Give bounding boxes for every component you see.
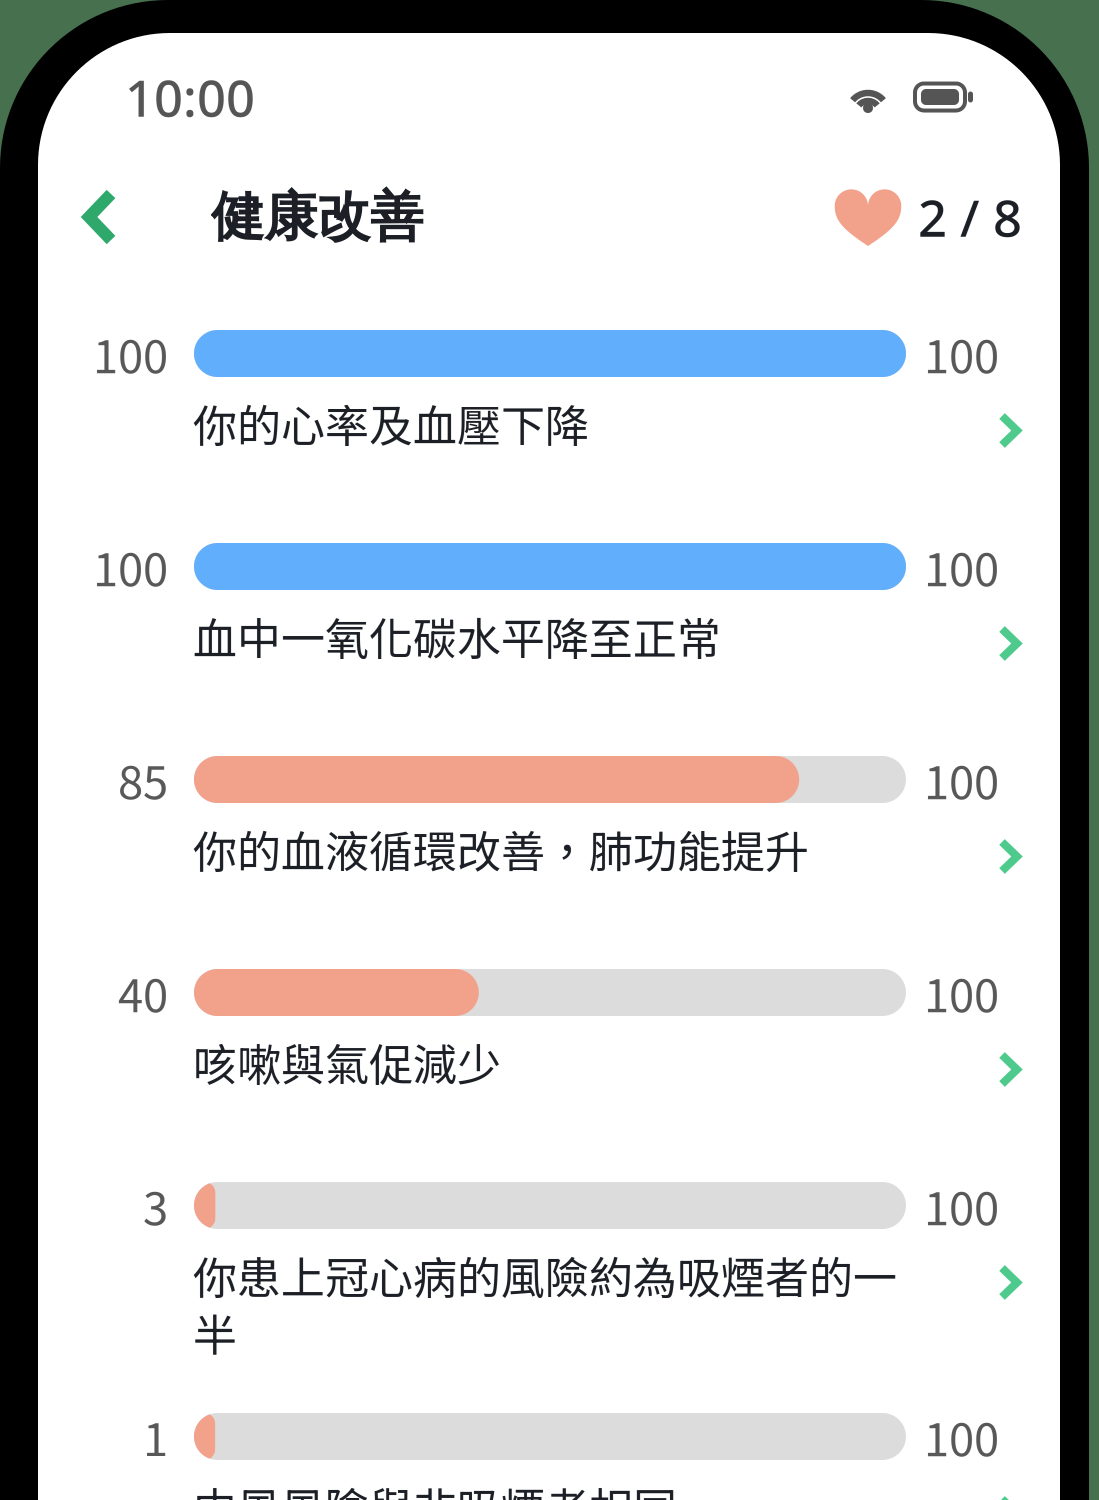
button[interactable]: Back xyxy=(62,172,138,262)
staticText: 中風風險與非吸煙者相同 xyxy=(193,1474,677,1500)
staticText: 100 xyxy=(93,321,168,386)
staticText: 咳嗽與氣促減少 xyxy=(193,1030,501,1094)
button[interactable]: 1 xyxy=(38,1413,1060,1500)
staticText: 100 xyxy=(924,1404,999,1469)
button[interactable]: 3 xyxy=(38,1182,1060,1306)
staticText: 血中一氧化碳水平降至正常 xyxy=(193,604,721,668)
button[interactable]: 40 xyxy=(38,969,1060,1093)
button[interactable]: 100 xyxy=(38,543,1060,667)
staticText: 100 xyxy=(924,747,999,812)
staticText: 100 xyxy=(924,1173,999,1238)
staticText: 2 / 8 xyxy=(918,182,1022,251)
button[interactable]: 85 xyxy=(38,756,1060,880)
staticText: 40 xyxy=(118,960,168,1025)
staticText: 你的心率及血壓下降 xyxy=(193,391,589,455)
staticText: 健康改善 xyxy=(211,183,423,251)
staticText: 100 xyxy=(93,534,168,599)
button[interactable]: 100 xyxy=(38,330,1060,454)
staticText: 你患上冠心病的風險約為吸煙者的一半 xyxy=(193,1243,897,1364)
staticText: 100 xyxy=(924,321,999,386)
staticText: 你的血液循環改善，肺功能提升 xyxy=(193,817,809,881)
staticText: 1 xyxy=(143,1404,168,1469)
staticText: 100 xyxy=(924,960,999,1025)
staticText: 3 xyxy=(143,1173,168,1238)
staticText: 85 xyxy=(118,747,168,812)
staticText: 100 xyxy=(924,534,999,599)
staticText: 10:00 xyxy=(125,62,255,131)
